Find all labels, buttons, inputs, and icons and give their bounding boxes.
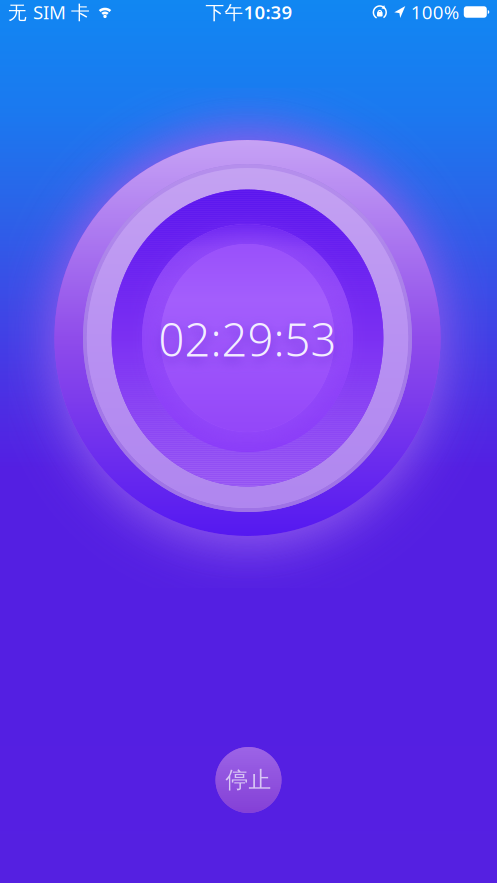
staticText: 下午10:39 bbox=[205, 0, 292, 24]
button[interactable]: 停止 bbox=[215, 747, 281, 813]
staticText: 无 SIM 卡 bbox=[8, 0, 90, 24]
staticText: 100% bbox=[411, 0, 460, 24]
staticText: 停止 bbox=[225, 766, 271, 794]
staticText: 02:29:53 bbox=[158, 309, 336, 369]
